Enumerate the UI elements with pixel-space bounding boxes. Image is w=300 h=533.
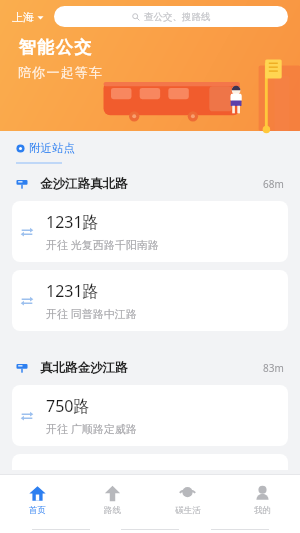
button[interactable]: 碳生活: [150, 475, 225, 525]
staticText: 查公交、搜路线: [144, 11, 211, 23]
staticText: 附近站点: [29, 141, 75, 155]
staticText: 智能公交: [18, 37, 92, 58]
button[interactable]: 首页: [0, 475, 75, 525]
button[interactable]: 真北路金沙江路: [0, 348, 300, 385]
staticText: 750路: [46, 395, 90, 417]
staticText: 路线: [104, 505, 121, 516]
button[interactable]: 上海: [10, 7, 46, 27]
button[interactable]: 附近站点: [14, 139, 77, 157]
staticText: 碳生活: [175, 505, 201, 516]
staticText: 83m: [263, 361, 284, 375]
button[interactable]: 750路: [12, 385, 288, 446]
staticText: 首页: [29, 505, 46, 516]
button[interactable]: 1231路: [12, 201, 288, 262]
staticText: 上海: [12, 10, 34, 24]
button[interactable]: 查公交、搜路线: [54, 6, 288, 27]
button[interactable]: 1231路: [12, 270, 288, 331]
staticText: 开往 光复西路千阳南路: [46, 237, 159, 252]
button[interactable]: 路线: [75, 475, 150, 525]
staticText: 金沙江路真北路: [40, 176, 128, 192]
staticText: 68m: [263, 177, 284, 191]
staticText: 1231路: [46, 211, 99, 233]
staticText: 真北路金沙江路: [40, 360, 128, 376]
button[interactable]: 金沙江路真北路: [0, 164, 300, 201]
staticText: 开往 广顺路定威路: [46, 421, 137, 436]
staticText: 开往 同普路中江路: [46, 306, 137, 321]
staticText: 我的: [254, 505, 271, 516]
button[interactable]: 我的: [225, 475, 300, 525]
staticText: 陪你一起等车: [18, 64, 104, 80]
staticText: 1231路: [46, 280, 99, 302]
